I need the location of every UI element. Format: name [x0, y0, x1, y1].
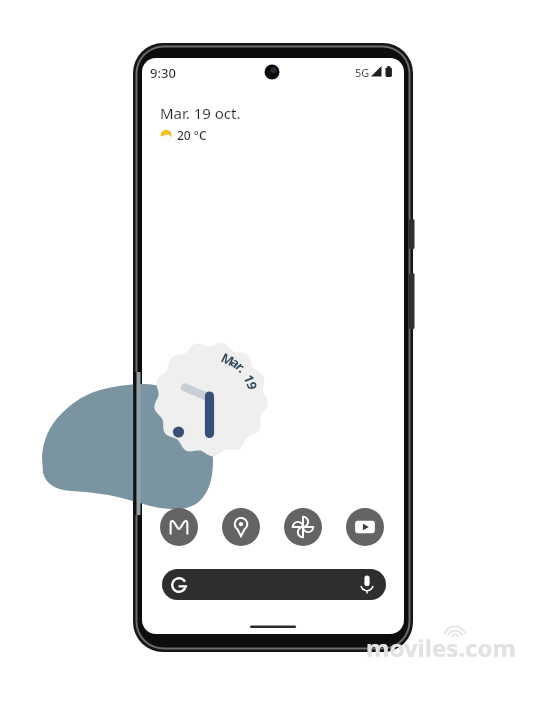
staticText: 1: [238, 372, 262, 394]
staticText: Mar. 19 oct.: [160, 103, 241, 123]
staticText: M: [217, 348, 240, 373]
staticText: 20 °C: [177, 127, 207, 143]
staticText: 9:30: [150, 64, 176, 82]
staticText: 5G: [355, 65, 370, 80]
button[interactable]: Search: [162, 569, 386, 600]
button[interactable]: Gmail: [160, 508, 198, 546]
staticText: [235, 367, 261, 391]
button[interactable]: Photos: [284, 508, 322, 546]
staticText: moviles.com: [366, 631, 516, 664]
button[interactable]: YouTube: [346, 508, 384, 546]
button[interactable]: Maps: [222, 508, 260, 546]
staticText: 9: [241, 380, 263, 400]
staticText: a: [225, 353, 250, 379]
staticText: r: [230, 358, 256, 384]
staticText: .: [233, 363, 259, 387]
button[interactable]: Mar. 19 oct.: [160, 103, 241, 143]
